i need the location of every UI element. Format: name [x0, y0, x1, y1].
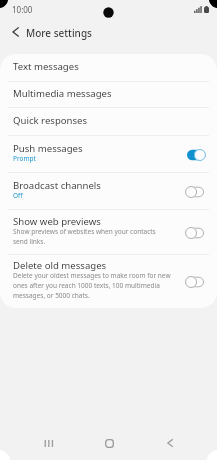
staticText: Multimedia messages: [13, 87, 112, 100]
staticText: Quick responses: [13, 114, 88, 127]
staticText: Text messages: [13, 60, 79, 73]
staticText: Show web previews: [13, 215, 101, 228]
button[interactable]: Toggle off: [186, 226, 205, 240]
staticText: 10:00: [12, 4, 33, 15]
staticText: More settings: [26, 26, 92, 40]
staticText: Push messages: [13, 142, 83, 155]
button[interactable]: Toggle off: [186, 275, 205, 289]
staticText: Delete your oldest messages to make room…: [13, 271, 171, 300]
button[interactable]: Multimedia messages: [0, 82, 217, 108]
button[interactable]: Delete old messages: [0, 255, 217, 308]
staticText: Show previews of websites when your cont…: [13, 227, 156, 246]
button[interactable]: Toggle off: [186, 185, 205, 199]
staticText: Broadcast channels: [13, 179, 101, 192]
staticText: Off: [13, 191, 23, 200]
button[interactable]: Navigate up: [3, 20, 28, 44]
staticText: Prompt: [13, 154, 36, 163]
button[interactable]: Broadcast channels: [0, 173, 217, 210]
button[interactable]: Back: [155, 428, 185, 458]
button[interactable]: Recent apps: [33, 428, 63, 458]
button[interactable]: Home: [94, 428, 124, 458]
staticText: Delete old messages: [13, 259, 107, 272]
button[interactable]: Quick responses: [0, 108, 217, 136]
button[interactable]: Toggle on: [186, 148, 205, 162]
button[interactable]: Show web previews: [0, 210, 217, 255]
button[interactable]: Push messages: [0, 136, 217, 173]
button[interactable]: Text messages: [0, 54, 217, 82]
